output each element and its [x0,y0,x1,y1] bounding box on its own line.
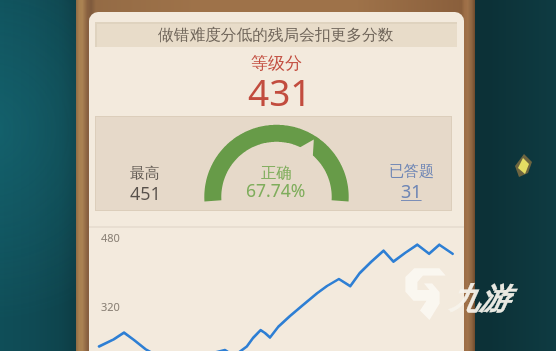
staticText: 480 [101,230,120,245]
staticText: 等级分 [251,53,302,74]
button[interactable]: 已答题 [376,159,446,203]
staticText: 最高 [130,164,160,183]
staticText: 九游 [449,280,509,318]
staticText: 67.74% [246,178,306,202]
staticText: 451 [130,181,161,206]
staticText: 320 [101,299,120,314]
staticText: 已答题 [389,162,434,181]
staticText: 431 [248,66,312,116]
button[interactable]: 做错难度分低的残局会扣更多分数 [95,22,457,47]
staticText: 31 [401,179,422,204]
staticText: 做错难度分低的残局会扣更多分数 [158,25,394,45]
other: 9game watermark [0,0,556,351]
staticText: 正确 [261,163,292,183]
